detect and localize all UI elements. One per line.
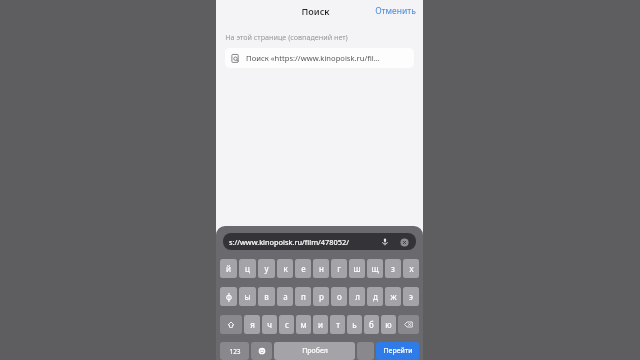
button[interactable]: Clear text	[398, 236, 410, 248]
staticText: э	[409, 291, 413, 302]
staticText: ы	[244, 291, 251, 302]
staticText: ф	[226, 291, 232, 302]
button[interactable]: ш	[349, 259, 365, 278]
staticText: д	[373, 291, 378, 302]
staticText: ж	[390, 291, 397, 302]
button[interactable]: п	[295, 287, 311, 306]
button[interactable]: х	[403, 259, 419, 278]
button[interactable]: Перейти	[376, 342, 419, 360]
staticText: я	[250, 319, 255, 330]
staticText: Перейти	[383, 346, 413, 356]
button[interactable]: Поиск «https://www.kinopoisk.ru/fil...	[225, 48, 414, 68]
staticText: л	[355, 291, 360, 302]
button[interactable]: я	[244, 315, 260, 334]
button[interactable]: н	[313, 259, 329, 278]
staticText: Поиск «https://www.kinopoisk.ru/fil...	[246, 53, 380, 63]
staticText: Отменить	[375, 5, 416, 17]
staticText: е	[301, 263, 306, 274]
staticText: 123	[229, 347, 241, 356]
staticText: г	[337, 263, 341, 274]
button[interactable]: ц	[239, 259, 256, 278]
staticText: На этой странице (совпадений нет)	[225, 32, 348, 42]
button[interactable]: м	[296, 315, 311, 334]
button[interactable]: л	[349, 287, 365, 306]
staticText: о	[337, 291, 342, 302]
button[interactable]: б	[364, 315, 379, 334]
button[interactable]: Emoji	[251, 342, 272, 360]
button[interactable]: Voice input	[379, 236, 391, 248]
button[interactable]: Отменить	[372, 2, 419, 20]
button[interactable]: ь	[347, 315, 362, 334]
button[interactable]: ы	[239, 287, 256, 306]
button[interactable]: Shift	[220, 315, 242, 334]
button[interactable]: Пробел	[274, 342, 355, 360]
staticText: в	[264, 291, 269, 302]
button[interactable]: s://www.kinopoisk.ru/film/478052/	[223, 233, 416, 250]
button[interactable]: а	[277, 287, 293, 306]
staticText: к	[283, 263, 288, 274]
button[interactable]: в	[258, 287, 275, 306]
button[interactable]: р	[313, 287, 329, 306]
staticText: s://www.kinopoisk.ru/film/478052/	[229, 237, 349, 247]
button[interactable]: д	[367, 287, 383, 306]
button[interactable]: 123	[220, 342, 249, 360]
staticText: п	[301, 291, 306, 302]
staticText: с	[285, 319, 289, 330]
staticText: ш	[353, 263, 361, 274]
staticText: Пробел	[302, 346, 328, 356]
button[interactable]: и	[313, 315, 328, 334]
button[interactable]: Period	[357, 342, 374, 360]
button[interactable]: Backspace	[398, 315, 419, 334]
button[interactable]: з	[385, 259, 401, 278]
staticText: ь	[352, 319, 357, 330]
staticText: и	[318, 319, 323, 330]
staticText: щ	[371, 263, 379, 274]
staticText: н	[319, 263, 324, 274]
button[interactable]: с	[279, 315, 294, 334]
button[interactable]: э	[403, 287, 419, 306]
staticText: з	[391, 263, 395, 274]
staticText: ч	[267, 319, 272, 330]
button[interactable]: к	[277, 259, 293, 278]
button[interactable]: ч	[262, 315, 277, 334]
staticText: ц	[245, 263, 250, 274]
button[interactable]: т	[330, 315, 345, 334]
button[interactable]: й	[220, 259, 237, 278]
staticText: р	[319, 291, 324, 302]
button[interactable]: ф	[220, 287, 237, 306]
staticText: ю	[385, 319, 392, 330]
staticText: б	[369, 319, 374, 330]
staticText: а	[283, 291, 288, 302]
staticText: у	[264, 263, 269, 274]
staticText: й	[226, 263, 231, 274]
staticText: м	[300, 319, 307, 330]
staticText: Поиск	[301, 5, 330, 17]
staticText: х	[409, 263, 414, 274]
button[interactable]: у	[258, 259, 275, 278]
button[interactable]: ю	[381, 315, 396, 334]
button[interactable]: г	[331, 259, 347, 278]
button[interactable]: е	[295, 259, 311, 278]
button[interactable]: ж	[385, 287, 401, 306]
button[interactable]: щ	[367, 259, 383, 278]
staticText: т	[336, 319, 340, 330]
button[interactable]: о	[331, 287, 347, 306]
